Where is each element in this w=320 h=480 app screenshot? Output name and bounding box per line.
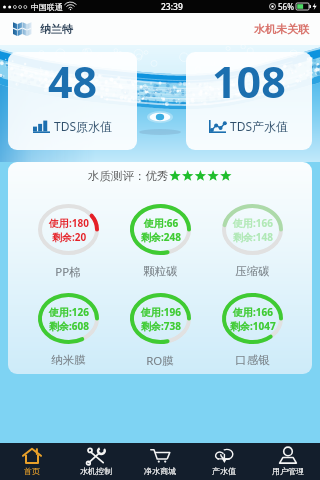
button[interactable]: 使用:126	[22, 293, 114, 367]
staticText: 产水值	[212, 466, 236, 476]
staticText: 剩余:1047	[230, 319, 276, 333]
staticText: 使用:166	[233, 216, 273, 230]
staticText: 水机未关联	[254, 22, 309, 36]
staticText: 108	[212, 52, 286, 111]
staticText: 使用:180	[49, 216, 89, 230]
staticText: 纳兰特	[40, 22, 73, 36]
staticText: 用户管理	[272, 466, 304, 476]
button[interactable]: 使用:66	[114, 204, 206, 278]
staticText: 剩余:248	[141, 230, 181, 244]
staticText: 口感银	[235, 353, 270, 367]
button[interactable]: 使用:196	[114, 293, 206, 369]
button[interactable]: 水机未关联	[254, 22, 309, 36]
staticText: 剩余:148	[233, 230, 273, 244]
staticText: PP棉	[55, 264, 81, 280]
staticText: 净水商城	[144, 466, 176, 476]
staticText: 压缩碳	[235, 264, 270, 278]
staticText: 水质测评：优秀	[88, 169, 169, 183]
button[interactable]: 108	[186, 52, 312, 150]
staticText: 使用:166	[233, 305, 273, 319]
staticText: 使用:126	[49, 305, 89, 319]
staticText: 使用:196	[141, 305, 181, 319]
staticText: TDS产水值	[230, 118, 289, 134]
button[interactable]: 使用:180	[22, 204, 114, 280]
staticText: 首页	[24, 466, 40, 476]
button[interactable]: 产水值	[192, 443, 256, 480]
staticText: 剩余:738	[141, 319, 181, 333]
staticText: 剩余:608	[49, 319, 89, 333]
staticText: TDS原水值	[54, 118, 113, 134]
button[interactable]: 净水商城	[128, 443, 192, 480]
button[interactable]: 用户管理	[256, 443, 320, 480]
staticText: 23:39	[161, 1, 183, 13]
staticText: 剩余:20	[52, 230, 87, 244]
staticText: 使用:66	[144, 216, 179, 230]
staticText: 48	[48, 52, 98, 111]
staticText: 56%	[278, 1, 294, 12]
button[interactable]: 水机控制	[64, 443, 128, 480]
staticText: 颗粒碳	[143, 264, 178, 278]
button[interactable]: 48	[8, 52, 137, 150]
button[interactable]: 使用:166	[206, 293, 298, 367]
button[interactable]: 使用:166	[206, 204, 298, 278]
staticText: 中国联通	[31, 2, 63, 12]
button[interactable]: 首页	[0, 443, 64, 480]
staticText: RO膜	[146, 353, 174, 369]
staticText: 纳米膜	[51, 353, 86, 367]
staticText: 水机控制	[80, 466, 112, 476]
